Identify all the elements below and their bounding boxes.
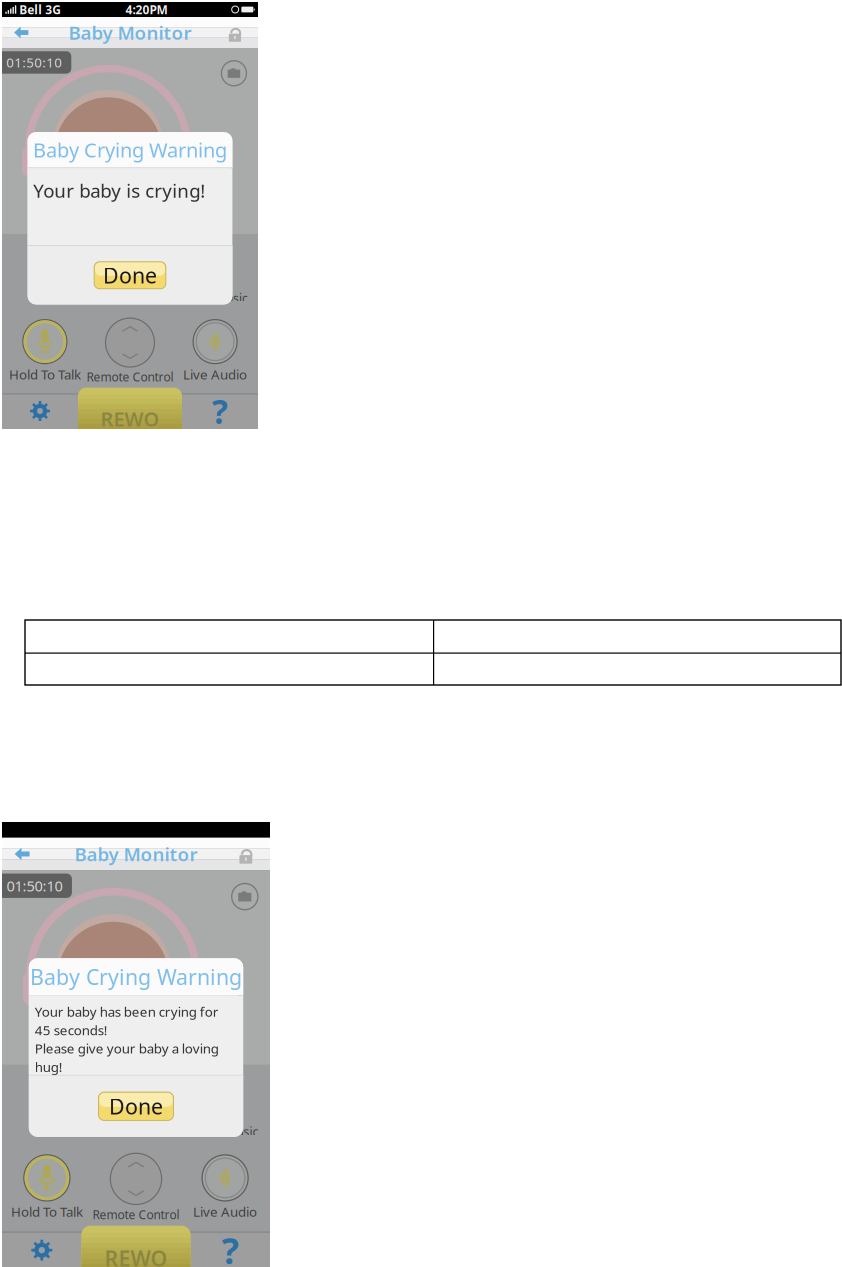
staticText: Hold To Talk (9, 365, 81, 383)
button[interactable]: Live Audio (183, 309, 247, 383)
button[interactable]: Take snapshot (228, 880, 261, 913)
button[interactable]: Lock screen (221, 19, 254, 46)
staticText: Your baby is crying! (33, 178, 205, 203)
staticText: Please give your baby a loving (35, 1039, 219, 1057)
staticText: usic (226, 290, 248, 306)
staticText: Remote Control (92, 1207, 179, 1222)
button[interactable]: Settings (2, 1231, 82, 1267)
staticText: usic (236, 1124, 258, 1139)
button[interactable]: Hold To Talk (11, 1144, 83, 1220)
staticText: Live Audio (183, 365, 247, 383)
staticText: Hold To Talk (11, 1203, 83, 1220)
button[interactable]: Remote Control (86, 309, 173, 385)
button[interactable]: Take snapshot (218, 58, 249, 89)
staticText: ? (212, 389, 228, 433)
button[interactable]: REWO home (78, 388, 182, 429)
staticText: hug! (35, 1058, 63, 1076)
button[interactable]: Remote Control (92, 1144, 179, 1222)
staticText: Bell 3G (16, 1, 61, 17)
button[interactable]: Live Audio (193, 1144, 257, 1220)
button[interactable]: Back (6, 18, 36, 47)
staticText: Done (109, 1092, 163, 1120)
staticText: Baby Monitor (74, 842, 197, 866)
button[interactable]: REWO home (82, 1226, 190, 1267)
button[interactable]: Help (190, 1231, 270, 1267)
button[interactable]: Back (6, 839, 38, 869)
staticText: 45 seconds! (35, 1021, 108, 1039)
button[interactable]: Done (98, 1092, 173, 1120)
staticText: Baby Crying Warning (33, 136, 227, 163)
button[interactable]: Help (182, 393, 258, 429)
button[interactable]: Lock screen (232, 840, 265, 868)
staticText: Live Audio (193, 1203, 257, 1220)
staticText: Baby Crying Warning (30, 963, 242, 991)
staticText: ? (222, 1226, 239, 1267)
staticText: 01:50:10 (7, 876, 63, 895)
staticText: Done (103, 261, 157, 289)
staticText: REWO (104, 1244, 167, 1267)
button[interactable]: Hold To Talk (9, 309, 81, 383)
staticText: Baby Monitor (68, 20, 191, 45)
staticText: Remote Control (86, 369, 173, 385)
button[interactable]: Settings (2, 393, 78, 429)
staticText: 01:50:10 (6, 54, 62, 71)
staticText: REWO (100, 405, 159, 432)
staticText: 4:20PM (125, 1, 167, 17)
staticText: Your baby has been crying for (35, 1003, 219, 1020)
button[interactable]: Done (94, 262, 166, 289)
